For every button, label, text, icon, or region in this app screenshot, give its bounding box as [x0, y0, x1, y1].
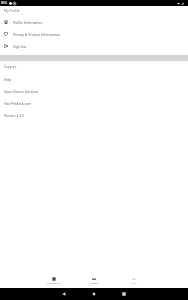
- staticText: Support: [4, 65, 17, 69]
- staticText: Mailbox: [90, 282, 99, 285]
- staticText: Sign Out: [13, 44, 27, 48]
- staticText: More: [131, 282, 137, 285]
- staticText: Open Source Libraries: [4, 89, 39, 93]
- button[interactable]: Store & Print: [35, 272, 73, 288]
- staticText: Profile Information: [13, 20, 43, 24]
- button[interactable]: More: [115, 272, 153, 288]
- staticText: Visit Petdesk.com: [4, 101, 32, 105]
- button[interactable]: Mailbox: [75, 272, 113, 288]
- staticText: Privacy & Product Information: [13, 32, 60, 36]
- button[interactable]: Version 2.3.0: [0, 109, 188, 121]
- button[interactable]: Privacy & Product Information: [0, 28, 188, 40]
- button[interactable]: Support: [0, 61, 188, 73]
- button[interactable]: Sign Out: [0, 40, 188, 52]
- staticText: Version 2.3.0: [4, 113, 24, 117]
- staticText: My Profile: [4, 8, 20, 12]
- button[interactable]: Visit Petdesk.com: [0, 97, 188, 109]
- button[interactable]: Open Source Libraries: [0, 85, 188, 97]
- other: Back: [62, 292, 66, 296]
- button[interactable]: Help: [0, 73, 188, 85]
- staticText: Store & Print: [47, 282, 61, 285]
- other: Home: [92, 292, 96, 296]
- button[interactable]: Profile Information: [0, 16, 188, 28]
- other: Recents: [122, 292, 126, 296]
- staticText: Help: [4, 77, 12, 81]
- staticText: 9:54: [1, 1, 7, 5]
